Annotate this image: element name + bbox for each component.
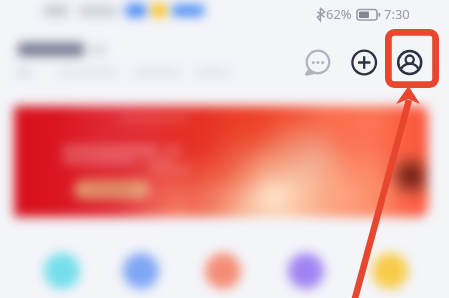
staticText: 7:30 [384,5,410,23]
button[interactable]: Add [346,44,382,80]
button[interactable]: Account [392,44,428,80]
button[interactable]: Messages [300,44,336,80]
staticText: 62% [326,5,352,23]
